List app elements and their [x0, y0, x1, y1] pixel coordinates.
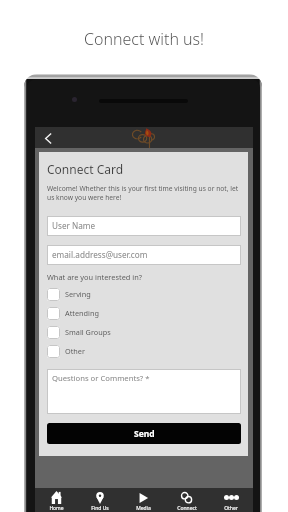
staticText: Serving — [65, 289, 91, 299]
button[interactable]: Media — [121, 488, 165, 512]
staticText: email.address@user.com — [52, 249, 148, 260]
button[interactable]: Connect — [165, 488, 209, 512]
staticText: Questions or Comments? * — [52, 373, 150, 383]
button[interactable]: Home — [35, 488, 78, 512]
button[interactable]: Attending — [47, 306, 241, 320]
staticText: Other — [65, 346, 85, 356]
staticText: Media — [136, 505, 151, 512]
staticText: Attending — [65, 308, 99, 318]
staticText: Send — [134, 428, 155, 440]
button[interactable]: Find Us — [78, 488, 121, 512]
button[interactable]: Other — [47, 344, 241, 358]
staticText: What are you interested in? — [47, 272, 142, 282]
button[interactable]: Questions or Comments? * — [47, 369, 241, 414]
staticText: Other — [224, 505, 238, 512]
button[interactable]: Other — [209, 488, 253, 512]
staticText: Small Groups — [65, 327, 111, 337]
staticText: Find Us — [91, 505, 109, 512]
staticText: Home — [49, 505, 64, 512]
staticText: Connect Card — [47, 161, 124, 177]
button[interactable]: Back — [39, 129, 57, 147]
staticText: Connect — [177, 505, 197, 512]
staticText: Welcome! Whether this is your first time… — [47, 184, 241, 202]
button[interactable]: Small Groups — [47, 325, 241, 339]
button[interactable]: Send — [47, 423, 241, 444]
button[interactable]: User Name — [47, 216, 241, 236]
button[interactable]: email.address@user.com — [47, 245, 241, 265]
button[interactable]: Home logo — [132, 127, 155, 148]
button[interactable]: Serving — [47, 287, 241, 301]
staticText: Connect with us! — [84, 28, 205, 50]
staticText: User Name — [52, 220, 96, 231]
